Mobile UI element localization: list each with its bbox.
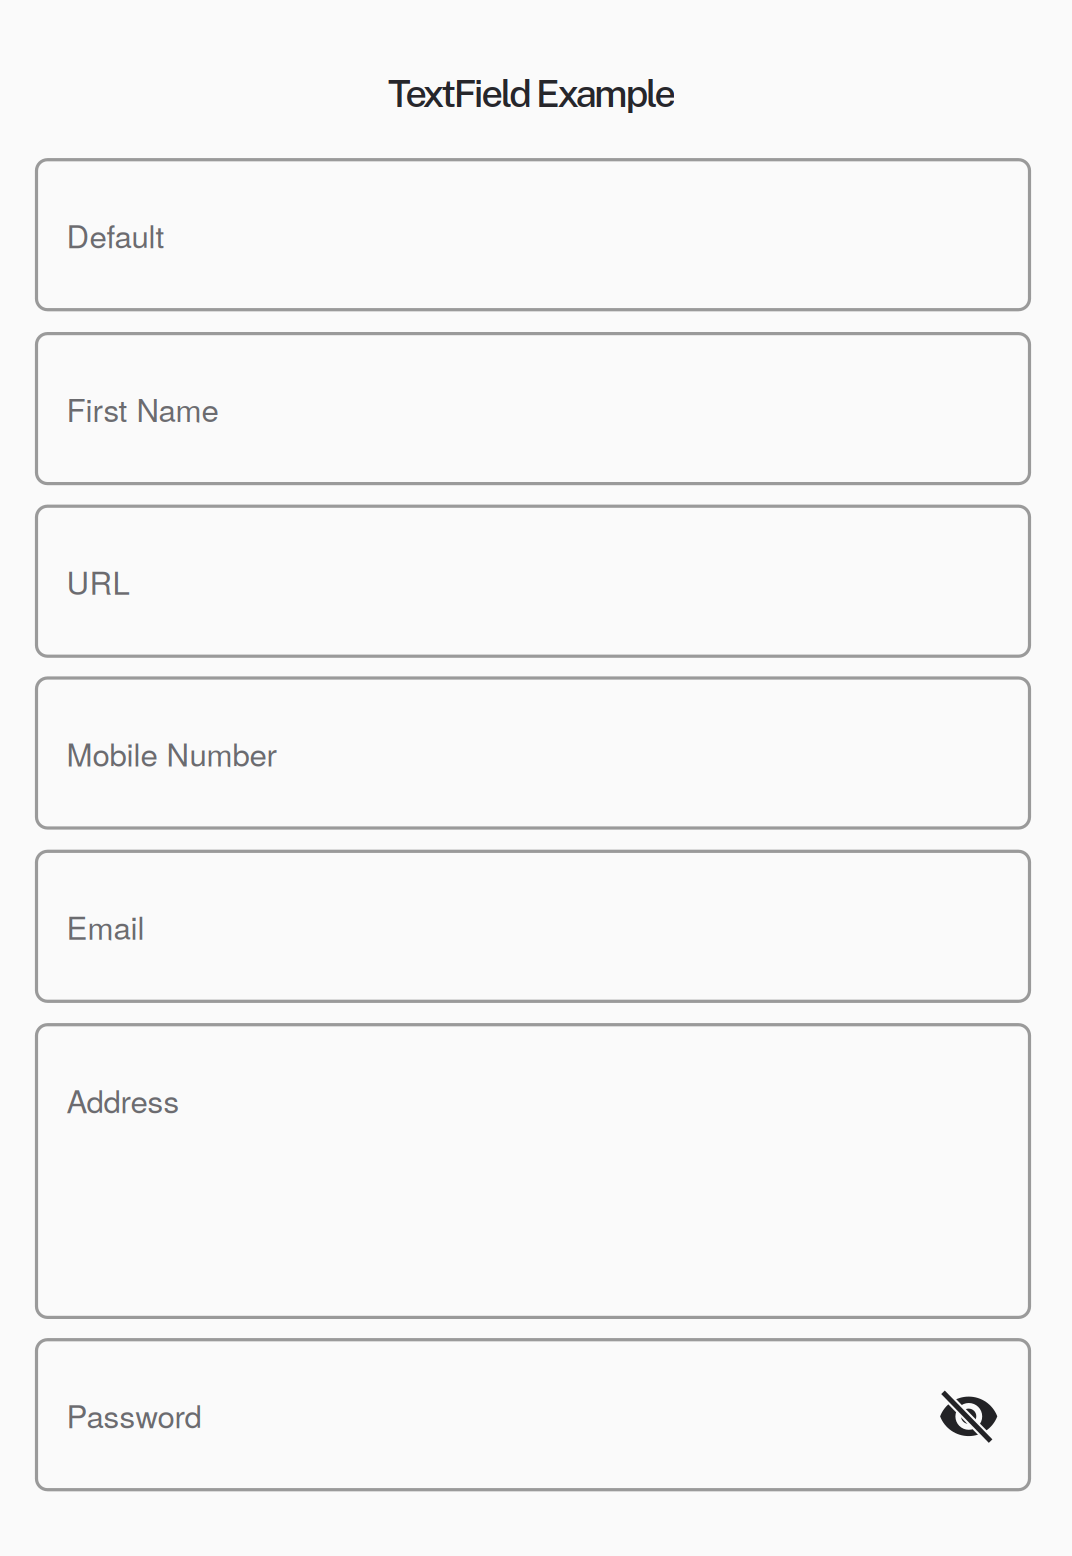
button[interactable]: Default: [36, 160, 1029, 310]
staticText: Email: [66, 904, 144, 949]
button[interactable]: Password: [36, 1340, 1029, 1490]
staticText: URL: [66, 559, 129, 604]
button[interactable]: Mobile Number: [36, 678, 1029, 828]
staticText: Default: [66, 212, 164, 257]
staticText: First Name: [66, 386, 218, 431]
button[interactable]: Show password: [939, 1390, 996, 1439]
button[interactable]: Address: [36, 1025, 1029, 1317]
staticText: Address: [66, 1077, 179, 1122]
button[interactable]: URL: [36, 506, 1029, 656]
button[interactable]: First Name: [36, 334, 1029, 484]
button[interactable]: Email: [36, 851, 1029, 1001]
staticText: Password: [66, 1392, 201, 1437]
staticText: Mobile Number: [66, 731, 276, 775]
staticText: TextField Example: [388, 70, 676, 115]
